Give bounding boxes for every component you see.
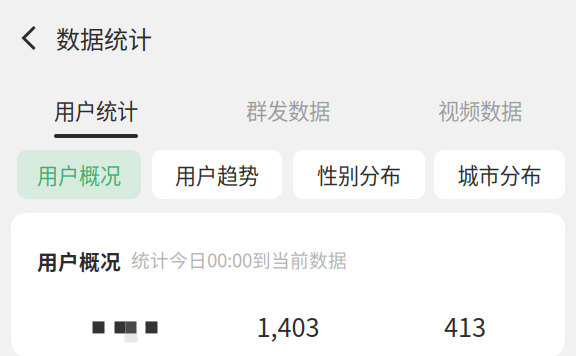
staticText: 用户概况 bbox=[37, 159, 121, 190]
button[interactable]: 视频数据 bbox=[384, 98, 576, 138]
button[interactable]: 城市分布 bbox=[434, 150, 565, 199]
staticText: 统计今日00:00到当前数据 bbox=[131, 246, 347, 273]
staticText: 用户统计 bbox=[54, 95, 138, 125]
button[interactable]: 用户概况 bbox=[17, 150, 141, 199]
staticText: 城市分布 bbox=[457, 159, 541, 190]
button[interactable]: 用户趋势 bbox=[152, 150, 282, 199]
staticText: 1,403 bbox=[256, 308, 319, 344]
button[interactable]: 性别分布 bbox=[293, 150, 425, 199]
staticText: 413 bbox=[444, 308, 486, 344]
staticText: 数据统计 bbox=[56, 21, 152, 55]
staticText: 用户趋势 bbox=[175, 159, 259, 190]
staticText: 用户概况 bbox=[37, 246, 121, 276]
staticText: 群发数据 bbox=[246, 95, 330, 125]
staticText: 视频数据 bbox=[438, 95, 522, 125]
button[interactable]: 用户统计 bbox=[0, 98, 192, 138]
button[interactable]: Back bbox=[7, 14, 51, 62]
button[interactable]: 群发数据 bbox=[192, 98, 384, 138]
staticText: 性别分布 bbox=[317, 159, 401, 190]
